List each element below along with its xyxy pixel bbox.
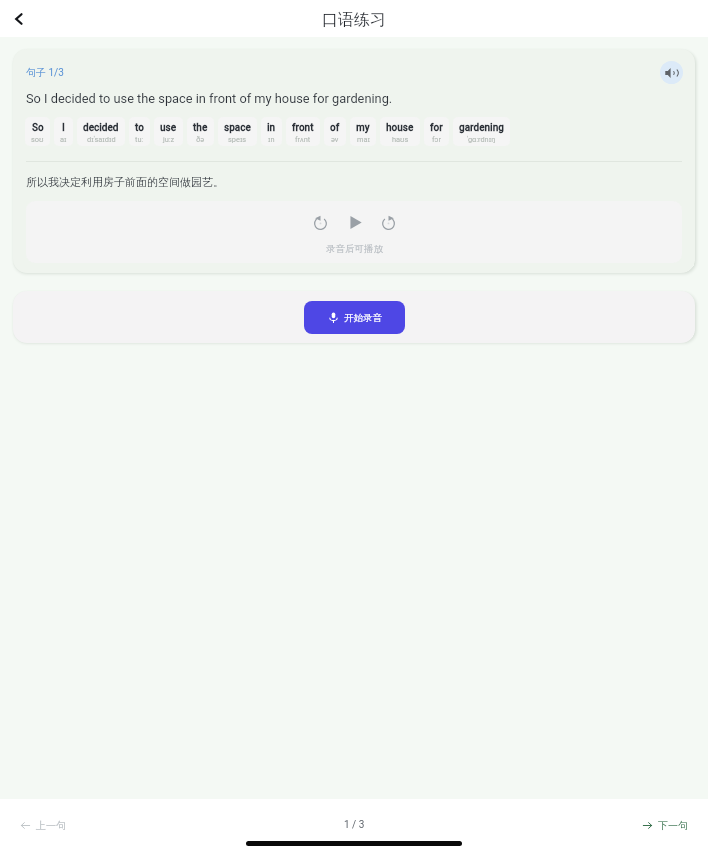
staticText: to	[135, 122, 144, 134]
staticText: 口语练习	[322, 10, 386, 30]
staticText: frʌnt	[295, 135, 311, 144]
button[interactable]: Back	[6, 6, 32, 32]
button[interactable]: to	[129, 117, 150, 146]
button[interactable]: gardening	[453, 117, 510, 146]
staticText: use	[160, 122, 177, 134]
button[interactable]: I	[54, 117, 73, 146]
staticText: 所以我决定利用房子前面的空间做园艺。	[26, 175, 224, 189]
button[interactable]: use	[154, 117, 183, 146]
button[interactable]: 下一句	[642, 819, 688, 832]
staticText: for	[430, 122, 443, 134]
button[interactable]: for	[424, 117, 449, 146]
staticText: space	[224, 122, 251, 134]
staticText: juːz	[163, 135, 175, 144]
staticText: of	[330, 122, 340, 134]
staticText: haʊs	[392, 135, 409, 144]
staticText: the	[193, 122, 208, 134]
button[interactable]: house	[380, 117, 420, 146]
button[interactable]: Replay 5 seconds	[310, 212, 330, 232]
staticText: speɪs	[228, 135, 247, 144]
button[interactable]: 上一句	[20, 819, 66, 832]
button[interactable]: space	[218, 117, 257, 146]
staticText: 录音后可播放	[326, 243, 383, 255]
staticText: 上一句	[36, 819, 66, 832]
staticText: ðə	[196, 135, 205, 144]
staticText: front	[292, 122, 314, 134]
button[interactable]: Forward 5 seconds	[378, 212, 398, 232]
staticText: my	[356, 122, 370, 134]
staticText: maɪ	[357, 135, 370, 144]
staticText: 句子 1/3	[26, 66, 64, 79]
button[interactable]: of	[324, 117, 346, 146]
staticText: 下一句	[658, 819, 688, 832]
button[interactable]: decided	[77, 117, 125, 146]
staticText: So I decided to use the space in front o…	[26, 91, 393, 106]
staticText: I	[62, 122, 65, 134]
staticText: 开始录音	[344, 312, 382, 324]
staticText: house	[386, 122, 414, 134]
staticText: ˈɡɑːrdnɪŋ	[467, 135, 496, 144]
staticText: 1 / 3	[344, 819, 365, 831]
button[interactable]: in	[261, 117, 282, 146]
staticText: So	[32, 122, 44, 134]
staticText: decided	[83, 122, 119, 134]
staticText: soʊ	[31, 135, 44, 144]
button[interactable]: So	[25, 117, 50, 146]
staticText: in	[267, 122, 276, 134]
button[interactable]: Play audio	[660, 61, 683, 84]
button[interactable]: my	[350, 117, 376, 146]
staticText: fɔr	[432, 135, 441, 144]
button[interactable]: Play	[344, 212, 364, 232]
staticText: əv	[331, 135, 339, 144]
staticText: dɪˈsaɪdɪd	[87, 135, 116, 144]
staticText: tuː	[135, 135, 144, 144]
button[interactable]: front	[286, 117, 320, 146]
staticText: aɪ	[60, 135, 67, 144]
staticText: gardening	[459, 122, 504, 134]
button[interactable]: 开始录音	[304, 301, 405, 334]
button[interactable]: the	[187, 117, 214, 146]
staticText: ɪn	[268, 135, 275, 144]
